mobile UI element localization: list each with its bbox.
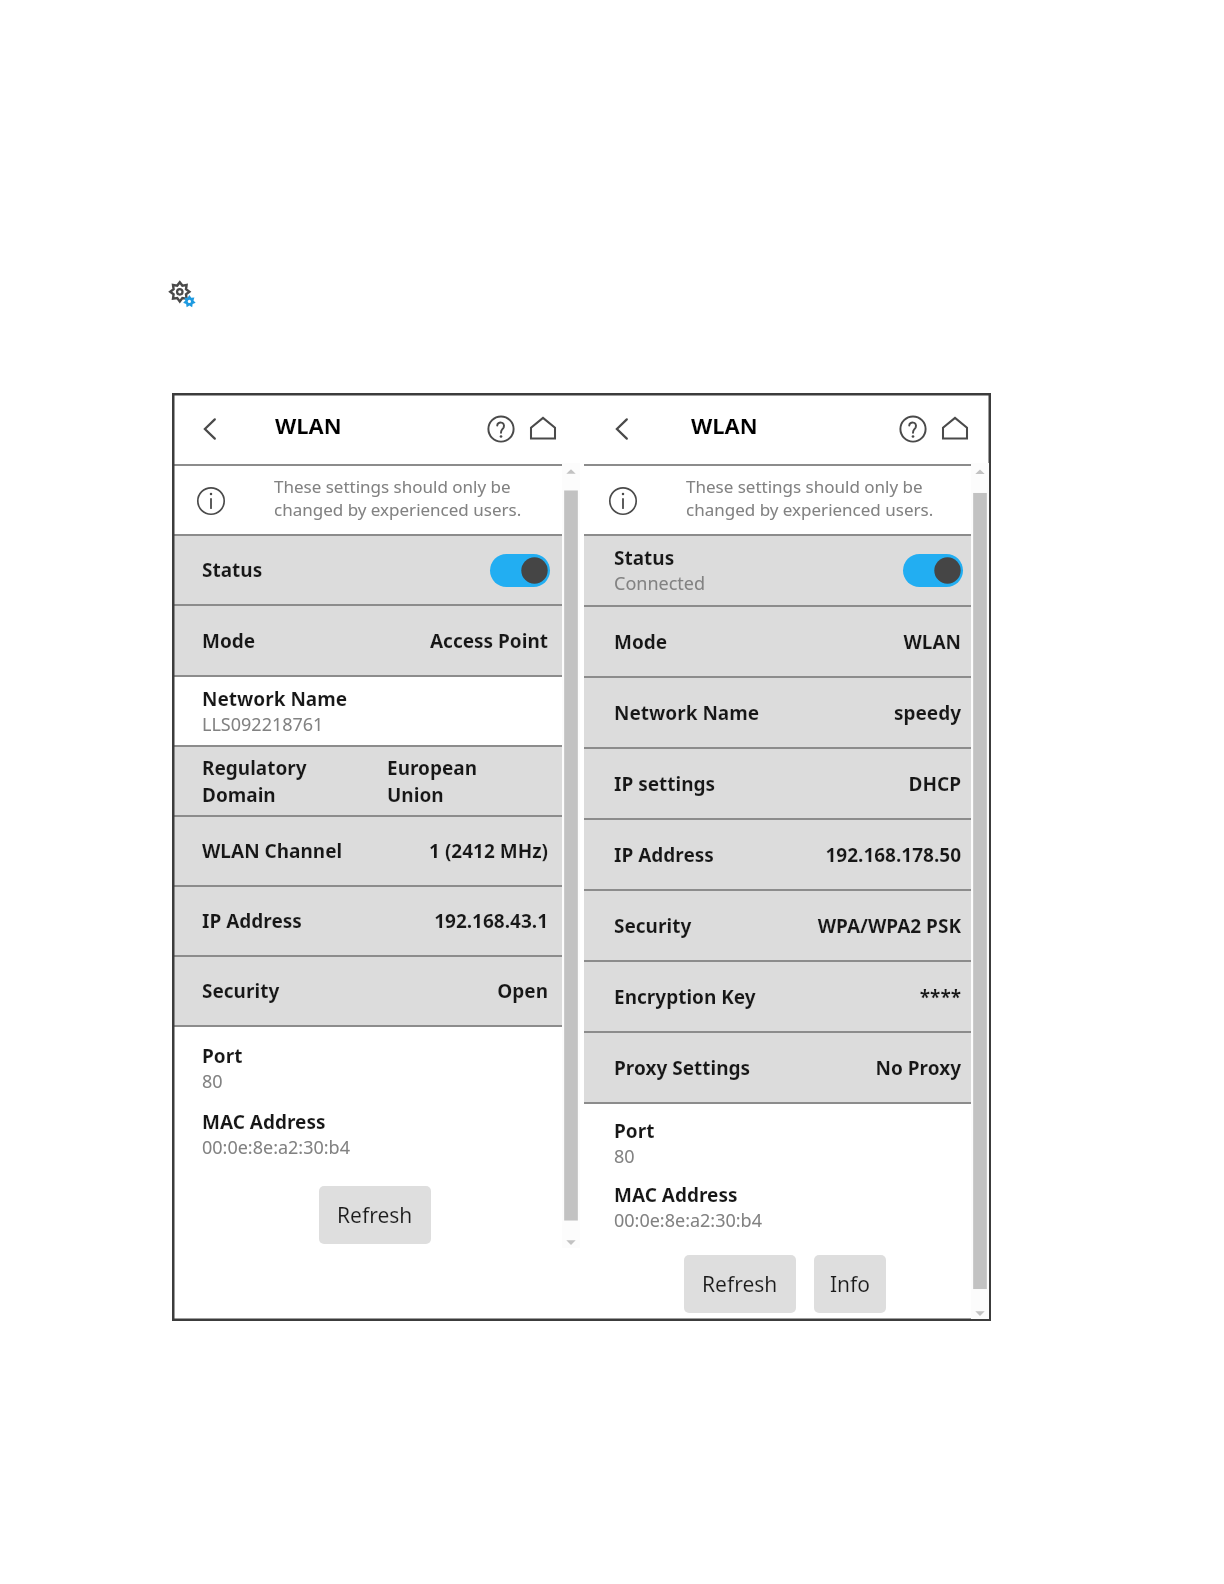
staticText: 192.168.178.50 xyxy=(825,842,961,868)
staticText: WLAN xyxy=(275,410,342,440)
staticText: IP Address xyxy=(614,842,714,868)
staticText: Access Point xyxy=(429,628,548,654)
button[interactable]: Mode xyxy=(172,606,578,675)
button[interactable]: Network Name xyxy=(172,677,578,745)
staticText: Refresh xyxy=(702,1270,778,1299)
button[interactable]: Status xyxy=(584,536,991,605)
staticText: Network Name xyxy=(614,700,760,726)
staticText: Regulatory Domain xyxy=(202,755,307,808)
button[interactable]: IP Address xyxy=(584,820,991,889)
staticText: WLAN xyxy=(903,629,961,655)
staticText: Port xyxy=(614,1118,655,1144)
staticText: changed by experienced users. xyxy=(686,498,934,521)
staticText: 00:0e:8e:a2:30:b4 xyxy=(202,1135,350,1160)
staticText: MAC Address xyxy=(202,1109,326,1135)
button[interactable]: Settings xyxy=(167,279,199,311)
button[interactable]: Refresh xyxy=(319,1186,431,1244)
staticText: WLAN Channel xyxy=(202,838,343,864)
staticText: 1 (2412 MHz) xyxy=(429,838,548,864)
staticText: Status xyxy=(202,557,263,583)
staticText: 80 xyxy=(614,1144,635,1169)
staticText: 00:0e:8e:a2:30:b4 xyxy=(614,1208,762,1233)
staticText: WLAN xyxy=(691,410,758,440)
button[interactable]: Regulatory Domain xyxy=(172,747,578,815)
staticText: changed by experienced users. xyxy=(274,498,522,521)
staticText: IP Address xyxy=(202,908,302,934)
staticText: Mode xyxy=(614,629,668,655)
staticText: Proxy Settings xyxy=(614,1055,751,1081)
button[interactable]: Mode xyxy=(584,607,991,676)
button[interactable]: WLAN Channel xyxy=(172,817,578,885)
staticText: **** xyxy=(919,984,961,1010)
button[interactable]: Security xyxy=(584,891,991,960)
staticText: Refresh xyxy=(337,1201,413,1230)
staticText: Security xyxy=(614,913,692,939)
button[interactable]: Proxy Settings xyxy=(584,1033,991,1102)
button[interactable]: IP Address xyxy=(172,887,578,955)
staticText: Security xyxy=(202,978,280,1004)
button[interactable]: Home xyxy=(937,411,973,447)
staticText: These settings should only be xyxy=(686,475,923,498)
button[interactable]: Help xyxy=(483,411,519,447)
staticText: Open xyxy=(497,978,548,1004)
staticText: Info xyxy=(830,1270,871,1299)
staticText: These settings should only be xyxy=(274,475,511,498)
button[interactable]: Encryption Key xyxy=(584,962,991,1031)
button[interactable]: Help xyxy=(895,411,931,447)
button[interactable]: Network Name xyxy=(584,678,991,747)
button[interactable]: Refresh xyxy=(684,1255,796,1313)
button[interactable]: Toggle status xyxy=(490,554,550,587)
staticText: Connected xyxy=(614,571,706,596)
staticText: No Proxy xyxy=(875,1055,961,1081)
staticText: European Union xyxy=(387,755,478,808)
staticText: speedy xyxy=(893,700,961,726)
button[interactable]: Back xyxy=(192,411,228,447)
staticText: DHCP xyxy=(908,771,961,797)
staticText: 80 xyxy=(202,1069,223,1094)
staticText: Encryption Key xyxy=(614,984,756,1010)
staticText: IP settings xyxy=(614,771,716,797)
button[interactable]: IP settings xyxy=(584,749,991,818)
button[interactable]: Home xyxy=(525,411,561,447)
staticText: MAC Address xyxy=(614,1182,738,1208)
staticText: 192.168.43.1 xyxy=(434,908,548,934)
staticText: Network Name xyxy=(202,686,348,712)
staticText: WPA/WPA2 PSK xyxy=(817,913,961,939)
button[interactable]: Toggle status xyxy=(903,554,963,587)
button[interactable]: Back xyxy=(604,411,640,447)
staticText: LLS092218761 xyxy=(202,712,324,737)
staticText: Mode xyxy=(202,628,256,654)
button[interactable]: Security xyxy=(172,957,578,1025)
button[interactable]: Status xyxy=(172,536,578,604)
staticText: Status xyxy=(614,545,675,571)
staticText: Port xyxy=(202,1043,243,1069)
button[interactable]: Info xyxy=(814,1255,886,1313)
